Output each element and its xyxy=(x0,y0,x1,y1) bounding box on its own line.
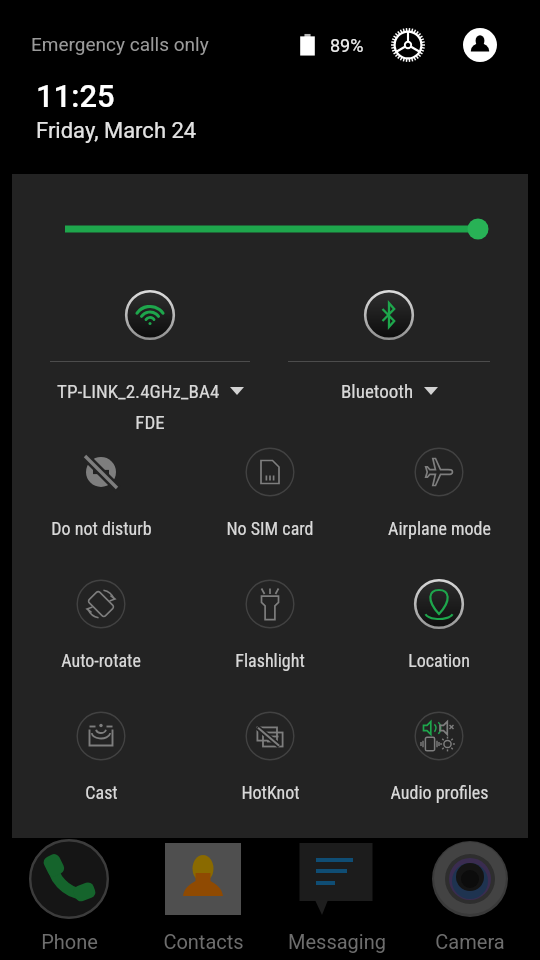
staticText: 89% xyxy=(330,35,364,56)
button[interactable]: Settings xyxy=(386,23,430,67)
button[interactable]: Wi-Fi xyxy=(119,284,181,346)
staticText: Camera xyxy=(435,930,505,953)
button[interactable]: Audio profiles xyxy=(355,704,523,808)
button[interactable]: Cast xyxy=(17,704,185,808)
staticText: Do not disturb xyxy=(51,518,152,539)
staticText: Bluetooth xyxy=(341,380,414,402)
button[interactable]: Airplane mode xyxy=(355,440,523,544)
button[interactable]: Phone xyxy=(2,838,136,960)
staticText: Phone xyxy=(41,930,98,953)
staticText: Flashlight xyxy=(235,650,305,671)
staticText: Messaging xyxy=(288,930,386,953)
button[interactable]: Brightness xyxy=(52,214,500,244)
button[interactable]: User account xyxy=(458,23,502,67)
staticText: Airplane mode xyxy=(388,518,491,539)
staticText: Auto-rotate xyxy=(61,650,141,671)
staticText: Emergency calls only xyxy=(31,33,209,55)
staticText: Contacts xyxy=(163,930,244,953)
button[interactable]: Flashlight xyxy=(186,572,354,676)
staticText: Cast xyxy=(85,782,118,803)
staticText: TP-LINK_2.4GHz_BA4 xyxy=(57,380,220,402)
button[interactable]: Messaging xyxy=(270,838,404,960)
staticText: HotKnot xyxy=(241,782,300,803)
button[interactable]: No SIM card xyxy=(186,440,354,544)
button[interactable]: Location xyxy=(355,572,523,676)
staticText: Friday, March 24 xyxy=(36,118,197,144)
button[interactable]: Auto-rotate xyxy=(17,572,185,676)
button[interactable]: Do not disturb xyxy=(17,440,185,544)
staticText: Audio profiles xyxy=(390,782,489,803)
staticText: No SIM card xyxy=(226,518,314,539)
staticText: Location xyxy=(408,650,470,671)
button[interactable]: Camera xyxy=(403,838,537,960)
staticText: FDE xyxy=(135,411,165,433)
staticText: 11:25 xyxy=(36,78,115,114)
button[interactable]: TP-LINK_2.4GHz_BA4 xyxy=(20,377,280,405)
button[interactable]: Bluetooth xyxy=(259,377,519,405)
button[interactable]: Contacts xyxy=(136,838,270,960)
button[interactable]: HotKnot xyxy=(186,704,354,808)
button[interactable]: Bluetooth xyxy=(358,284,420,346)
